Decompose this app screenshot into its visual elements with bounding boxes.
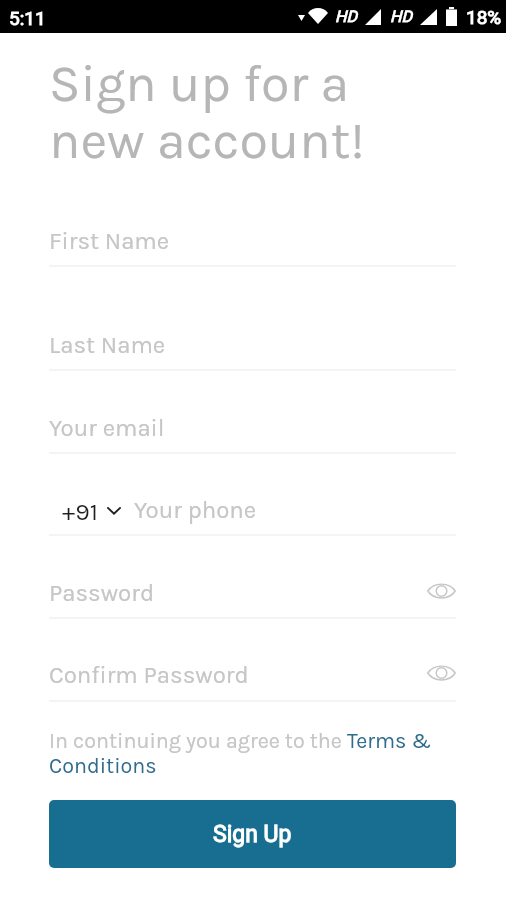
button[interactable]: Toggle password visibility [409,569,456,611]
staticText: HD [390,7,412,26]
button[interactable]: Toggle password visibility [409,651,456,693]
staticText: Your email [49,414,165,442]
staticText: Last Name [49,331,166,359]
staticText: Password [49,579,155,607]
staticText: +91 [62,497,98,526]
staticText: Your phone [134,496,257,524]
staticText: In continuing you agree to the Terms & C… [49,728,439,778]
staticText: HD [335,7,357,26]
button[interactable]: Sign Up [49,800,456,868]
staticText: Confirm Password [49,661,249,689]
staticText: 5:11 [9,7,46,29]
button[interactable] [49,405,456,463]
button[interactable] [49,487,456,545]
button[interactable] [49,322,456,380]
button[interactable] [49,570,456,628]
button[interactable] [49,218,456,276]
button[interactable] [49,652,456,711]
staticText: 18% [466,6,502,28]
staticText: First Name [49,227,170,255]
staticText: Sign up for a new account! [49,53,365,171]
staticText: Sign Up [213,821,292,848]
